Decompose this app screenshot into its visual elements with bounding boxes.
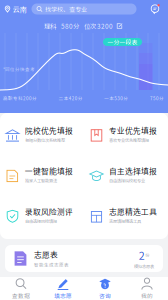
staticText: *同位分快查考 xyxy=(3,66,35,73)
button[interactable]: 填志愿 xyxy=(42,277,84,300)
staticText: 580分 xyxy=(61,21,79,31)
staticText: 自主选择填报 xyxy=(109,165,157,176)
staticText: 填志愿 xyxy=(54,292,72,300)
staticText: 云南 xyxy=(12,4,26,14)
staticText: 理科 xyxy=(44,21,56,31)
button[interactable]: Messages xyxy=(149,3,161,14)
staticText: 智能生成志愿表 xyxy=(34,262,69,268)
staticText: 查数据 xyxy=(12,292,30,300)
button[interactable]: 云南 xyxy=(4,3,26,15)
staticText: 自由选择院校和专业 xyxy=(109,177,145,184)
staticText: 2 xyxy=(139,247,145,263)
button[interactable]: 一分一段表 xyxy=(103,38,142,46)
staticText: 独家人工智能算法 xyxy=(25,177,57,184)
staticText: 一键智能填报 xyxy=(25,165,73,176)
staticText: 院校优先填报 xyxy=(25,125,73,136)
staticText: 志愿表 xyxy=(34,249,58,260)
button[interactable]: Edit score xyxy=(115,22,124,30)
staticText: 志愿填报精选工具 xyxy=(109,218,141,224)
button[interactable]: 专业优先填报 xyxy=(84,115,168,156)
staticText: 750分 xyxy=(150,95,164,102)
staticText: 位次 3200 xyxy=(84,21,113,31)
staticText: 录取风险测评 xyxy=(25,206,73,217)
staticText: 找学校、查专业 xyxy=(45,5,87,13)
staticText: 根据分数位次系统推荐 xyxy=(25,137,65,143)
staticText: 我的 xyxy=(141,292,153,300)
staticText: 高职专科200分 xyxy=(3,95,37,102)
staticText: 份 xyxy=(145,252,149,258)
button[interactable]: 找学校、查专业 xyxy=(31,3,136,14)
button[interactable]: 我的 xyxy=(126,277,168,300)
button[interactable]: 志愿精选工具 xyxy=(84,196,168,237)
button[interactable]: 一键智能填报 xyxy=(0,156,84,196)
button[interactable]: 院校优先填报 xyxy=(0,115,84,156)
staticText: 一本530分 xyxy=(104,95,128,102)
button[interactable]: 查数据 xyxy=(0,277,42,300)
button[interactable]: 自主选择填报 xyxy=(84,156,168,196)
staticText: 一分一段表 xyxy=(107,38,137,46)
staticText: 二本420分 xyxy=(59,95,83,102)
button[interactable]: 咨询 xyxy=(84,277,126,300)
staticText: 模拟志愿表 xyxy=(134,263,154,270)
staticText: 咨询 xyxy=(99,292,111,300)
staticText: 专业优先填报 xyxy=(109,125,157,136)
button[interactable]: 录取风险测评 xyxy=(0,196,84,237)
staticText: 喜欢专业优先推荐填报 xyxy=(109,137,149,143)
staticText: 志愿精选工具 xyxy=(109,206,157,217)
staticText: 自由选择院校填报 xyxy=(25,218,57,224)
button[interactable]: 志愿表 xyxy=(5,245,163,272)
